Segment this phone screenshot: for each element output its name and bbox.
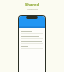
- staticText: Shared: [25, 2, 39, 7]
- button[interactable]: List item: [21, 40, 43, 45]
- staticText: collaborate: [27, 8, 38, 11]
- button[interactable]: List item: [21, 35, 43, 40]
- button[interactable]: List item: [21, 30, 43, 35]
- button[interactable]: List item: [21, 45, 43, 50]
- button[interactable]: App bar: [19, 16, 45, 28]
